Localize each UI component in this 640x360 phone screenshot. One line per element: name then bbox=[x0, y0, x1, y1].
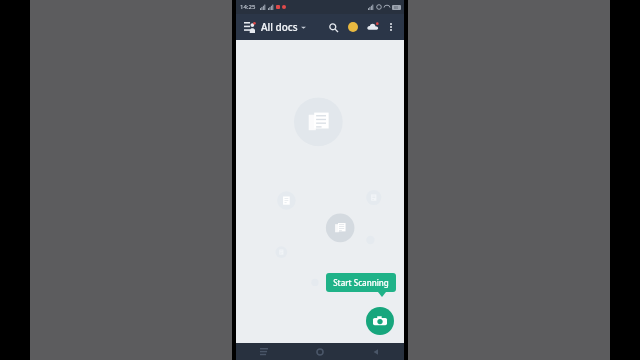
button[interactable]: Back bbox=[348, 343, 404, 360]
staticText: All docs bbox=[261, 20, 298, 34]
button[interactable]: Cloud sync bbox=[364, 18, 382, 36]
staticText: 14:25 bbox=[240, 3, 256, 11]
staticText: Start Scanning bbox=[333, 277, 389, 288]
button[interactable]: Start Scanning bbox=[366, 307, 394, 335]
button[interactable]: Account bbox=[344, 18, 362, 36]
button[interactable]: Recents bbox=[236, 343, 292, 360]
button[interactable]: Open navigation drawer bbox=[241, 19, 257, 35]
button[interactable]: All docs bbox=[261, 20, 306, 34]
button[interactable]: More options bbox=[383, 19, 399, 35]
button[interactable]: Home bbox=[292, 343, 348, 360]
staticText: 80 bbox=[394, 5, 399, 10]
button[interactable]: Start Scanning bbox=[326, 273, 396, 292]
button[interactable]: Search bbox=[324, 18, 342, 36]
